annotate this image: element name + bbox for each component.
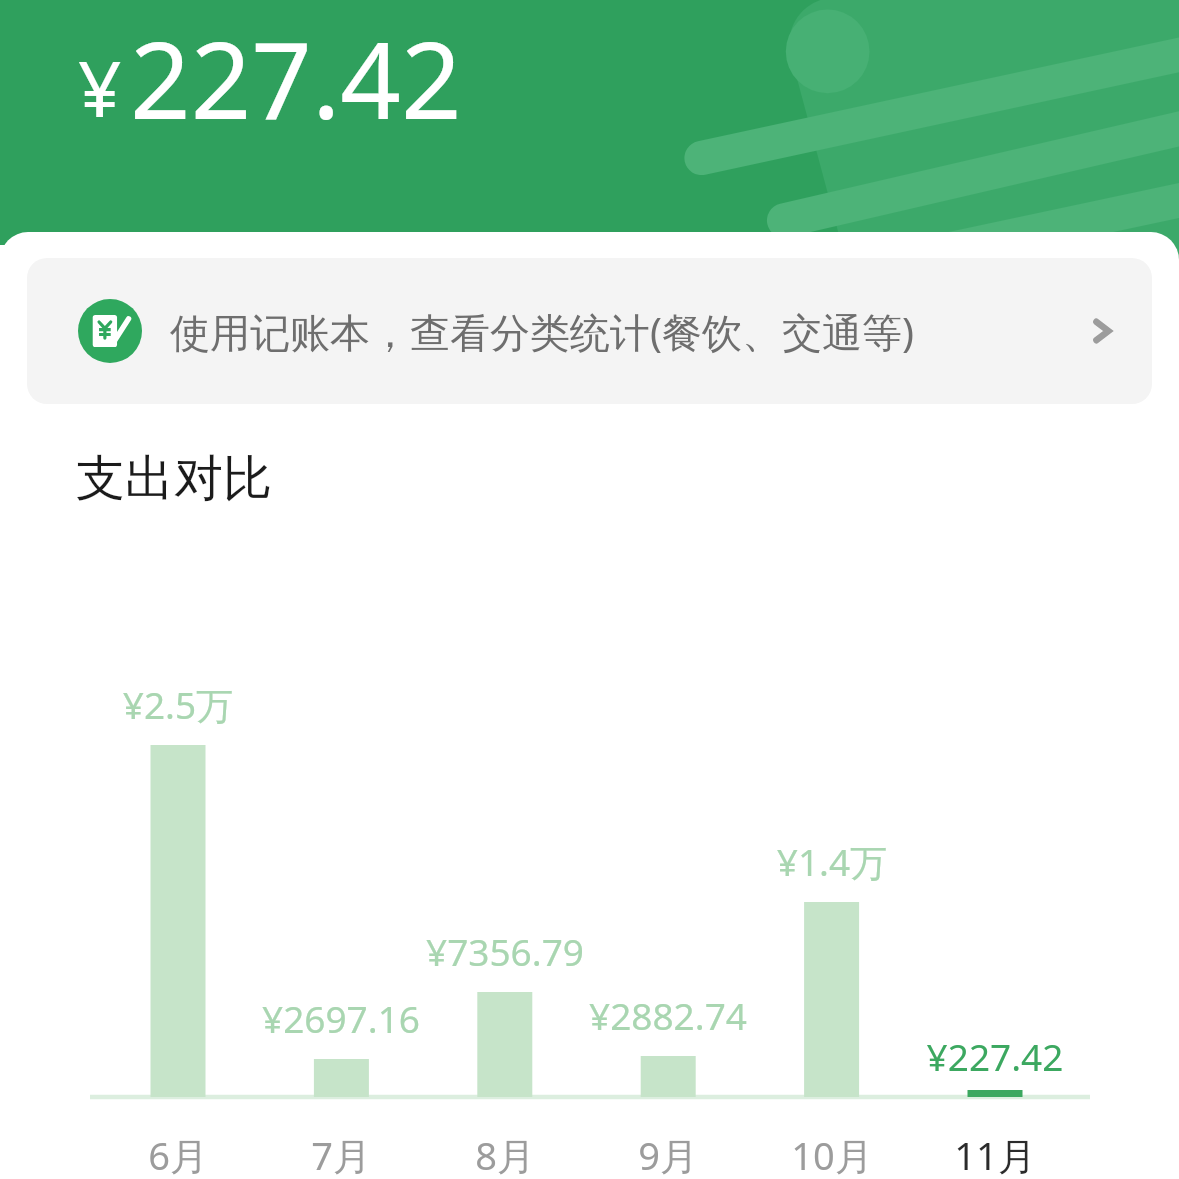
staticText: 7月: [241, 1129, 441, 1179]
other: 记账本: [78, 299, 142, 363]
staticText: ¥7356.79: [365, 926, 645, 976]
button[interactable]: 记账本: [27, 258, 1152, 404]
staticText: 227.42: [130, 6, 462, 150]
staticText: ¥227.42: [855, 1031, 1135, 1081]
staticText: ¥1.4万: [692, 836, 972, 887]
staticText: 11月: [895, 1129, 1095, 1179]
staticText: 支出对比: [76, 448, 272, 510]
staticText: 6月: [78, 1129, 278, 1179]
staticText: ¥2.5万: [38, 679, 318, 730]
staticText: 使用记账本，查看分类统计(餐饮、交通等): [170, 304, 914, 359]
staticText: ¥: [78, 36, 122, 140]
staticText: 9月: [568, 1129, 768, 1179]
staticText: 10月: [732, 1129, 932, 1179]
staticText: 8月: [405, 1129, 605, 1179]
staticText: ¥2697.16: [201, 993, 481, 1043]
staticText: ¥2882.74: [528, 990, 808, 1040]
